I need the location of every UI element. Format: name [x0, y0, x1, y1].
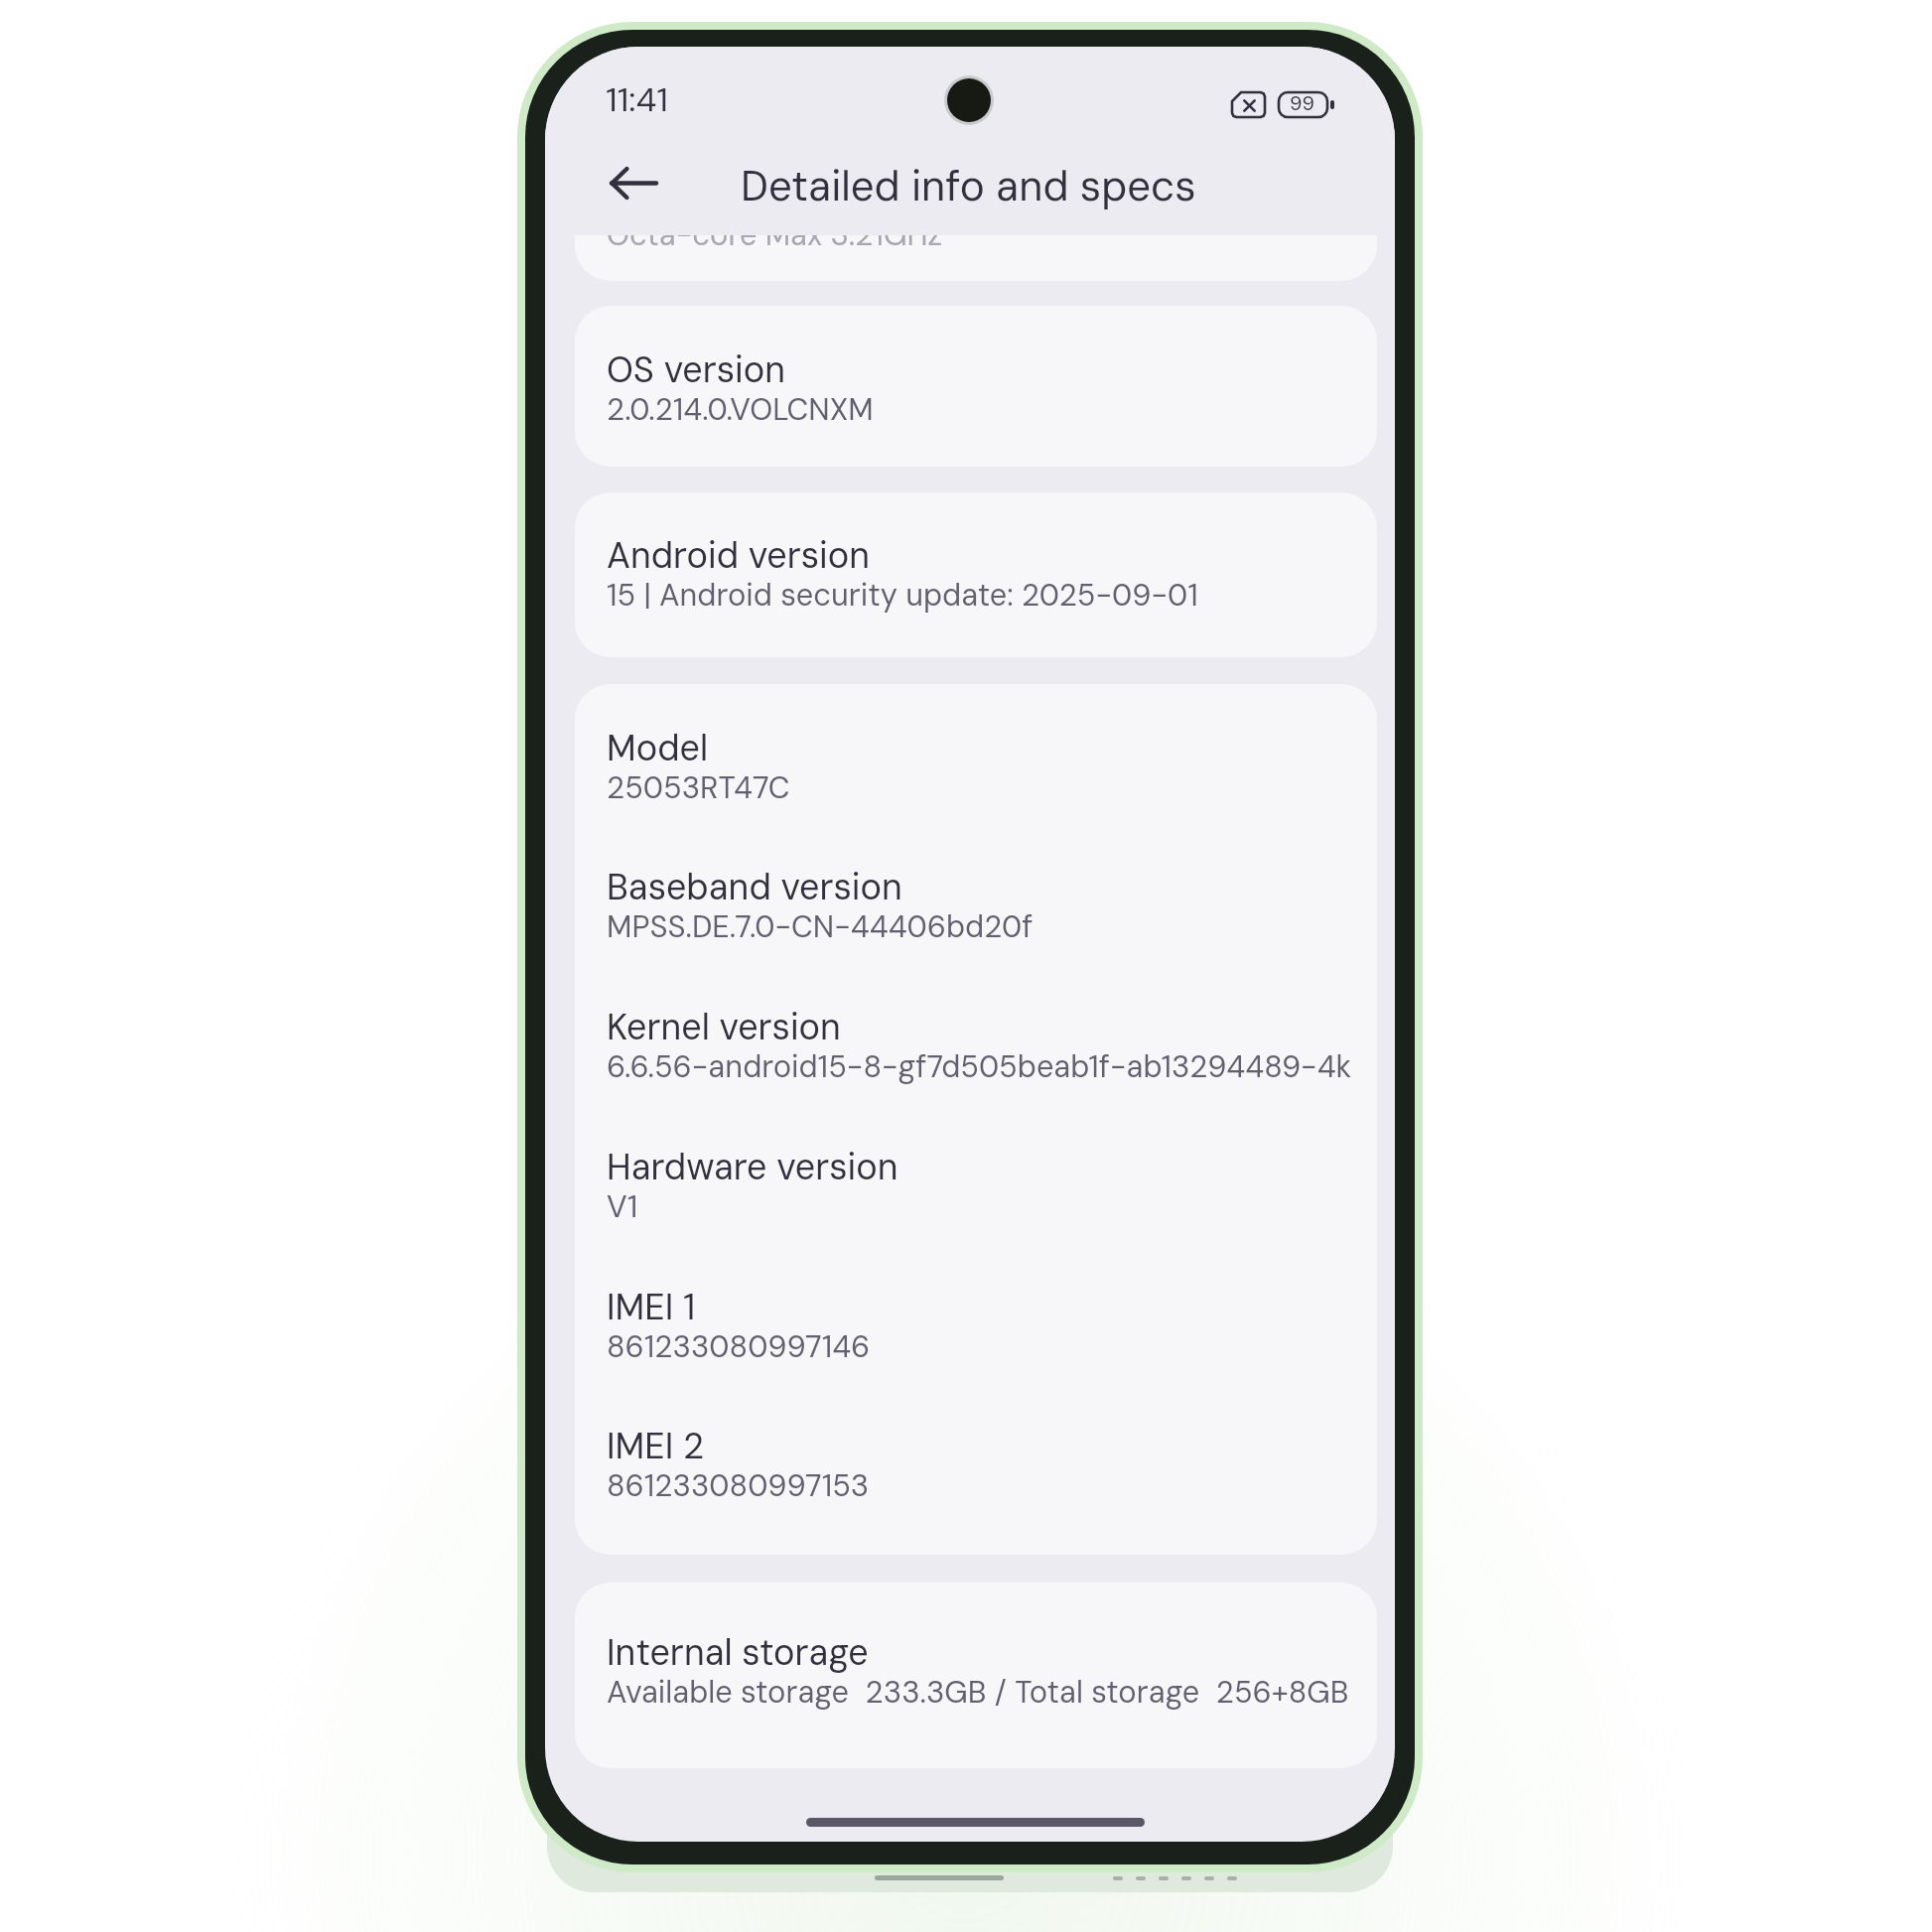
staticText: IMEI 2: [607, 1423, 705, 1469]
staticText: MPSS.DE.7.0-CN-44406bd20f: [607, 906, 1034, 946]
button[interactable]: Back: [595, 144, 672, 221]
staticText: Kernel version: [607, 1004, 841, 1050]
staticText: Detailed info and specs: [741, 159, 1196, 213]
button[interactable]: Hardware version: [575, 1130, 1377, 1247]
staticText: Octa-core Max 3.21GHz: [607, 214, 943, 254]
button[interactable]: IMEI 1: [575, 1270, 1377, 1387]
staticText: Available storage 233.3GB / Total storag…: [607, 1672, 1349, 1712]
button[interactable]: Android version: [575, 518, 1377, 635]
staticText: 861233080997153: [607, 1465, 870, 1505]
staticText: Hardware version: [607, 1144, 898, 1190]
staticText: V1: [607, 1186, 638, 1226]
button[interactable]: IMEI 2: [575, 1409, 1377, 1526]
staticText: OS version: [607, 346, 786, 393]
staticText: 25053RT47C: [607, 767, 790, 807]
staticText: 2.0.214.0.VOLCNXM: [607, 389, 874, 429]
staticText: 861233080997146: [607, 1326, 871, 1366]
staticText: Baseband version: [607, 864, 902, 910]
staticText: 6.6.56-android15-8-gf7d505beab1f-ab13294…: [607, 1046, 1352, 1086]
button[interactable]: Kernel version: [575, 990, 1377, 1107]
staticText: Android version: [607, 532, 871, 579]
button[interactable]: Baseband version: [575, 850, 1377, 967]
staticText: Internal storage: [607, 1629, 869, 1676]
button[interactable]: OS version: [575, 333, 1377, 450]
button[interactable]: Internal storage: [575, 1615, 1377, 1732]
staticText: 99: [1290, 90, 1314, 116]
button[interactable]: Model: [575, 711, 1377, 828]
staticText: 15 | Android security update: 2025-09-01: [607, 575, 1198, 615]
staticText: Model: [607, 725, 709, 771]
staticText: IMEI 1: [607, 1284, 696, 1330]
staticText: 11:41: [606, 77, 668, 121]
button[interactable]: Octa-core Max 3.21GHz: [575, 156, 1377, 281]
